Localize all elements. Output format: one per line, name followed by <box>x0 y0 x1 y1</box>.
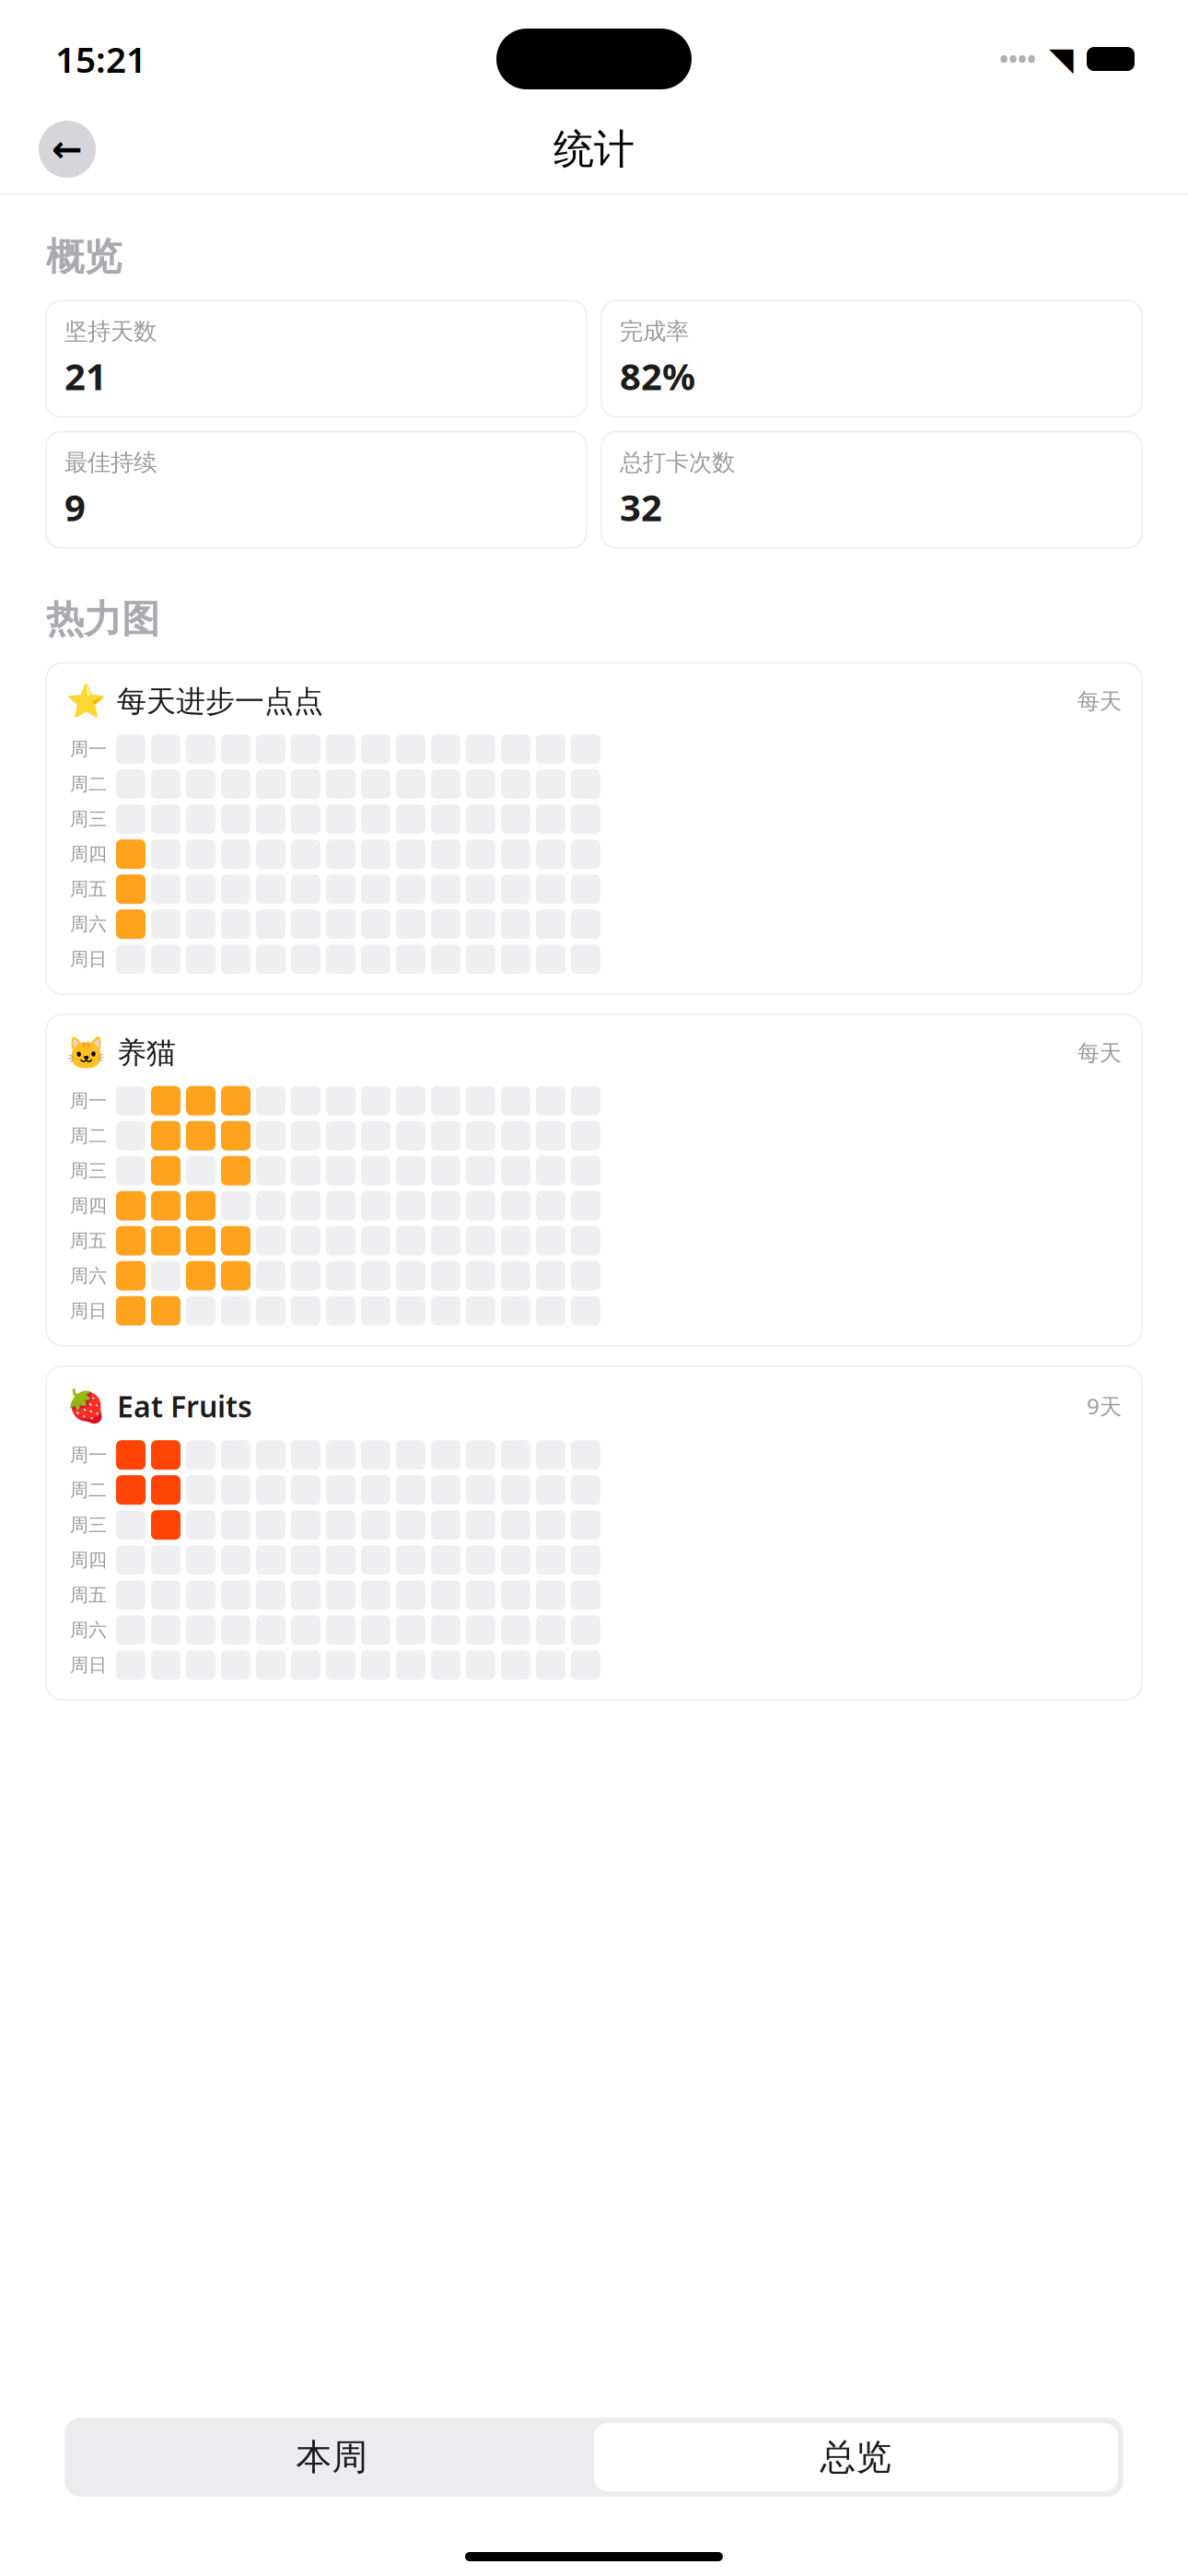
staticText: 周六 <box>70 1619 107 1641</box>
button[interactable]: 本周 <box>70 2423 594 2491</box>
staticText: 周一 <box>70 1089 107 1112</box>
button[interactable]: 返回 <box>39 121 96 178</box>
staticText: 每天进步一点点 <box>117 683 323 720</box>
staticText: 周五 <box>70 1584 107 1606</box>
staticText: •••• <box>999 43 1036 75</box>
staticText: 周二 <box>70 1479 107 1501</box>
staticText: 周日 <box>70 1299 107 1322</box>
staticText: 周一 <box>70 1444 107 1466</box>
staticText: 周日 <box>70 1654 107 1676</box>
staticText: 9 <box>64 482 86 531</box>
staticText: 养猫 <box>117 1035 176 1071</box>
staticText: 周二 <box>70 1124 107 1147</box>
staticText: 周五 <box>70 878 107 900</box>
staticText: 完成率 <box>620 317 689 346</box>
staticText: 周日 <box>70 948 107 971</box>
staticText: 15:21 <box>55 35 146 83</box>
staticText: 热力图 <box>46 596 159 643</box>
button[interactable]: 坚持天数 <box>46 301 587 417</box>
staticText: 周六 <box>70 1264 107 1287</box>
staticText: 概览 <box>46 234 122 280</box>
staticText: 本周 <box>296 2435 368 2479</box>
staticText: 9天 <box>1087 1391 1122 1421</box>
staticText: 统计 <box>553 124 635 174</box>
staticText: 周四 <box>70 1194 107 1217</box>
staticText: 32 <box>620 482 662 531</box>
staticText: 周一 <box>70 738 107 760</box>
staticText: 最佳持续 <box>64 448 157 477</box>
staticText: 周三 <box>70 808 107 830</box>
staticText: 坚持天数 <box>64 317 157 346</box>
staticText: 总打卡次数 <box>620 448 735 477</box>
staticText: 周四 <box>70 1549 107 1571</box>
staticText: 82% <box>620 351 695 400</box>
staticText: 周五 <box>70 1229 107 1252</box>
staticText: 每天 <box>1077 1039 1122 1067</box>
staticText: Eat Fruits <box>117 1386 252 1425</box>
staticText: 21 <box>64 351 107 400</box>
staticText: ◥ <box>1049 41 1074 77</box>
button[interactable]: 总览 <box>594 2423 1118 2491</box>
staticText: 周三 <box>70 1159 107 1182</box>
button[interactable]: 完成率 <box>601 301 1142 417</box>
staticText: 🍓 <box>66 1388 106 1424</box>
staticText: ⭐ <box>66 683 106 720</box>
staticText: 周三 <box>70 1514 107 1536</box>
staticText: 周六 <box>70 913 107 936</box>
staticText: 每天 <box>1077 688 1122 715</box>
staticText: 周四 <box>70 843 107 865</box>
staticText: 🐱 <box>66 1035 106 1071</box>
staticText: 总览 <box>820 2435 892 2479</box>
staticText: 周二 <box>70 773 107 795</box>
button[interactable]: 最佳持续 <box>46 432 587 548</box>
staticText: ← <box>52 128 83 170</box>
button[interactable]: 总打卡次数 <box>601 432 1142 548</box>
